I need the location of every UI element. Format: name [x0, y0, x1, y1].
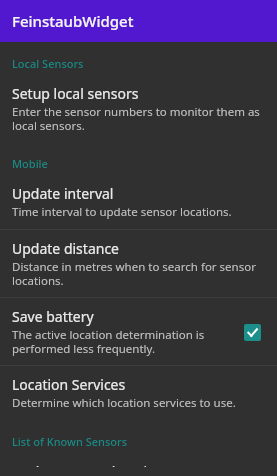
button[interactable]: Update distance: [0, 230, 277, 297]
staticText: Setup local sensors: [12, 84, 139, 103]
staticText: Update interval: [12, 184, 114, 203]
staticText: Time interval to update sensor locations…: [12, 204, 232, 220]
button[interactable]: Location Services: [0, 366, 277, 420]
button[interactable]: Update sensor locations: [0, 453, 277, 476]
staticText: Local Sensors: [12, 56, 84, 71]
staticText: Save battery: [12, 307, 94, 326]
staticText: FeinstaubWidget: [12, 11, 134, 31]
staticText: Mobile: [12, 156, 48, 171]
button[interactable]: Save battery: [0, 298, 277, 365]
button[interactable]: Save battery toggle: [237, 317, 267, 347]
staticText: The active location determination is per…: [12, 327, 229, 356]
button[interactable]: Update interval: [0, 175, 277, 229]
staticText: Enter the sensor numbers to monitor them…: [12, 104, 267, 133]
staticText: Determine which location services to use…: [12, 395, 236, 411]
button[interactable]: Setup local sensors: [0, 75, 277, 142]
staticText: Update sensor locations: [12, 462, 171, 467]
staticText: Update distance: [12, 239, 120, 258]
staticText: Location Services: [12, 375, 126, 394]
staticText: List of Known Sensors: [12, 434, 128, 449]
staticText: Distance in metres when to search for se…: [12, 259, 267, 288]
